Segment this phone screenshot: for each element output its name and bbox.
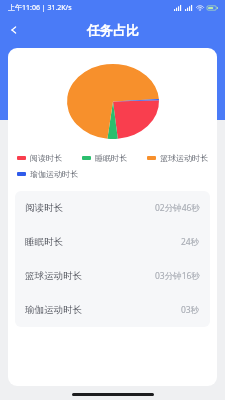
button[interactable]: 篮球运动时长 — [145, 153, 210, 163]
staticText: 任务占比 — [87, 22, 139, 38]
button[interactable]: 篮球运动时长 — [15, 259, 210, 293]
staticText: 篮球运动时长 — [160, 153, 208, 163]
staticText: 睡眠时长 — [25, 236, 63, 248]
staticText: 02分钟46秒 — [155, 202, 200, 214]
button[interactable]: 阅读时长 — [15, 191, 210, 225]
button[interactable]: 睡眠时长 — [15, 225, 210, 259]
button[interactable]: 瑜伽运动时长 — [15, 293, 210, 327]
button[interactable]: 瑜伽运动时长 — [15, 169, 80, 179]
button[interactable]: 睡眠时长 — [80, 153, 145, 163]
staticText: 24秒 — [181, 236, 200, 248]
button[interactable]: Back — [0, 16, 28, 44]
button[interactable]: 阅读时长 — [15, 153, 80, 163]
staticText: 瑜伽运动时长 — [25, 304, 82, 316]
staticText: 阅读时长 — [30, 153, 62, 163]
staticText: 03秒 — [181, 304, 200, 316]
staticText: 03分钟16秒 — [155, 270, 200, 282]
staticText: 上午11:06 | 31.2K/s — [8, 3, 72, 13]
staticText: 瑜伽运动时长 — [30, 169, 78, 179]
staticText: 阅读时长 — [25, 202, 63, 214]
staticText: 睡眠时长 — [95, 153, 127, 163]
staticText: 篮球运动时长 — [25, 270, 82, 282]
